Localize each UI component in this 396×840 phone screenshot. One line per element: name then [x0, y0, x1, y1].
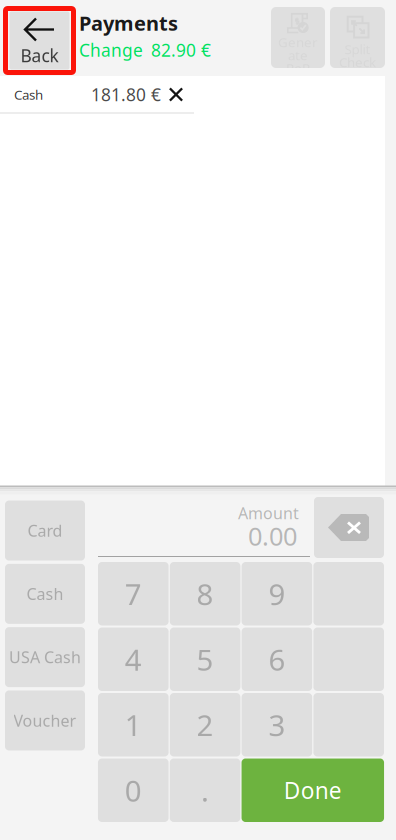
staticText: Voucher — [13, 710, 76, 731]
staticText: PoP — [286, 59, 310, 77]
button[interactable]: 3 — [242, 693, 312, 756]
button[interactable]: 2 — [170, 693, 240, 756]
button[interactable]: 7 — [98, 562, 169, 625]
staticText: 2 — [197, 705, 214, 744]
staticText: Check — [339, 53, 376, 71]
button[interactable]: 4 — [98, 627, 169, 691]
staticText: 6 — [268, 640, 285, 679]
button[interactable]: 0 — [98, 758, 169, 822]
button[interactable]: Cash — [5, 564, 85, 624]
button[interactable]: Done — [242, 758, 384, 822]
staticText: 4 — [125, 640, 142, 679]
staticText: . — [201, 771, 209, 810]
staticText: Card — [27, 520, 62, 541]
button[interactable]: Generate PoP — [271, 7, 325, 68]
button[interactable]: 8 — [170, 562, 240, 625]
staticText: 5 — [197, 640, 214, 679]
button[interactable]: Remove payment — [160, 77, 192, 111]
staticText: Change — [79, 38, 143, 61]
button[interactable]: 6 — [242, 627, 312, 691]
staticText: Cash — [26, 583, 63, 604]
staticText: USA Cash — [9, 646, 81, 668]
staticText: 0.00 — [248, 519, 297, 553]
button[interactable]: Back — [5, 8, 73, 72]
staticText: 7 — [125, 574, 142, 613]
staticText: Done — [284, 775, 342, 805]
button[interactable]: Delete — [314, 497, 384, 558]
button[interactable]: Voucher — [5, 690, 85, 750]
staticText: 181.80 € — [91, 83, 161, 106]
staticText: 3 — [268, 705, 285, 744]
staticText: 8 — [197, 574, 214, 613]
button[interactable]: 1 — [98, 693, 169, 756]
staticText: 9 — [268, 574, 285, 613]
staticText: Payments — [79, 10, 178, 36]
button[interactable]: Split Check — [330, 7, 385, 68]
staticText: Amount — [238, 502, 299, 524]
button[interactable]: USA Cash — [5, 627, 85, 687]
staticText: 1 — [125, 705, 142, 744]
button[interactable]: 9 — [242, 562, 312, 625]
staticText: 82.90 € — [151, 38, 211, 61]
staticText: Cash — [14, 86, 43, 103]
staticText: Back — [20, 44, 58, 67]
button[interactable]: Card — [5, 501, 85, 561]
button[interactable]: 5 — [170, 627, 240, 691]
staticText: 0 — [125, 771, 142, 810]
